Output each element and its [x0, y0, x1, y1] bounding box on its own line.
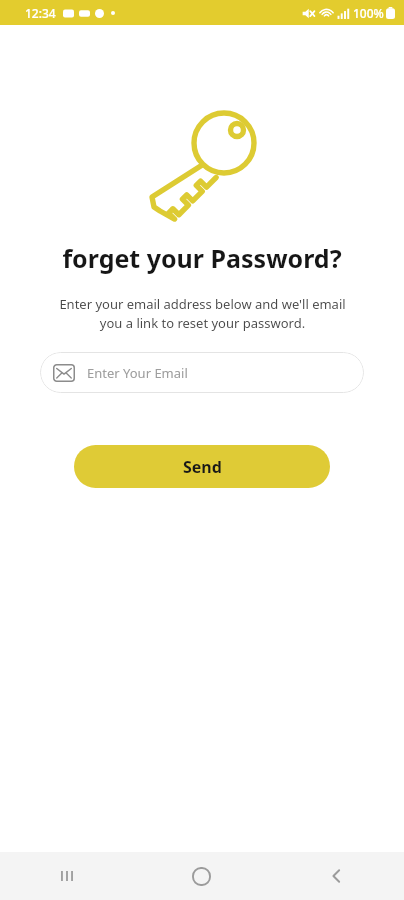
button[interactable]: Home: [134, 852, 269, 900]
staticText: Send: [183, 456, 222, 478]
button[interactable]: Enter Your Email: [40, 352, 364, 393]
button[interactable]: Recents: [0, 852, 134, 900]
staticText: Enter Your Email: [87, 364, 188, 382]
staticText: forget your Password?: [62, 241, 342, 275]
staticText: 100%: [353, 5, 384, 21]
button[interactable]: Send: [74, 445, 330, 488]
button[interactable]: Back: [269, 852, 404, 900]
staticText: Enter your email address below and we'll…: [59, 295, 346, 332]
staticText: 12:34: [25, 5, 56, 21]
other: Password key: [142, 107, 262, 217]
